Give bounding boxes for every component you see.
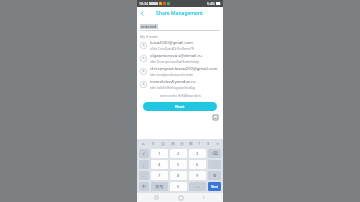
- staticText: $: [207, 141, 210, 146]
- staticText: olgaantonova.s@dtmail.ru: [150, 53, 202, 59]
- button[interactable]: 1: [151, 149, 168, 158]
- staticText: ⌫: [212, 151, 218, 156]
- staticText: entered: [141, 24, 157, 29]
- staticText: 8: [177, 173, 180, 179]
- staticText: 6: [196, 162, 199, 168]
- button[interactable]: Home: [176, 193, 185, 202]
- staticText: ¥: [152, 141, 155, 146]
- staticText: christmyrainlosew250@gmail.com: [150, 66, 218, 72]
- button[interactable]: 車: [186, 139, 195, 148]
- button[interactable]: 7: [151, 171, 168, 180]
- staticText: -: [143, 173, 145, 179]
- staticText: ⚙: [213, 173, 217, 178]
- button[interactable]: christmyrainlosew250@gmail.com: [137, 65, 223, 78]
- staticText: .: [214, 162, 216, 168]
- staticText: 5:4G: [207, 1, 215, 6]
- staticText: iden bcsdqaonhuaacschensiko: [150, 73, 194, 77]
- button[interactable]: ⌂: [138, 139, 148, 148]
- staticText: 1: [198, 141, 201, 146]
- button[interactable]: Back: [199, 193, 208, 202]
- button[interactable]: luisa2020@gmail.com: [137, 39, 223, 52]
- staticText: 台: [180, 141, 184, 146]
- button[interactable]: /: [139, 149, 149, 158]
- button[interactable]: $: [204, 139, 213, 148]
- button[interactable]: Back: [137, 8, 148, 19]
- button[interactable]: 2: [170, 149, 187, 158]
- button[interactable]: 点: [158, 139, 168, 148]
- staticText: Share Management: [156, 10, 204, 17]
- staticText: 0: [177, 184, 180, 190]
- staticText: /: [143, 151, 145, 157]
- staticText: 7: [158, 173, 161, 179]
- button[interactable]: 9: [189, 171, 206, 180]
- staticText: Next: [175, 104, 185, 110]
- staticText: My friends: [140, 34, 158, 39]
- staticText: mraceloksvllyamdox.ru: [150, 79, 196, 85]
- staticText: 1: [158, 151, 161, 157]
- staticText: 2: [177, 151, 180, 157]
- button[interactable]: mraceloksvllyamdox.ru: [137, 78, 223, 91]
- staticText: 10:34: [139, 1, 148, 6]
- staticText: id bir CrissQainADrOeiOsmuYPi: [150, 47, 195, 51]
- staticText: 品: [171, 141, 175, 146]
- staticText: iden Drcarujunaos0naEbudorkhalp: [150, 60, 200, 64]
- button[interactable]: 品: [168, 139, 177, 148]
- staticText: ⌴: [196, 185, 200, 189]
- button[interactable]: ∞: [213, 139, 222, 148]
- button[interactable]: Next: [208, 182, 221, 191]
- staticText: ∞: [216, 141, 220, 146]
- staticText: 中: [142, 184, 147, 189]
- button[interactable]: entered: [140, 23, 220, 30]
- button[interactable]: 台: [177, 139, 186, 148]
- button[interactable]: 3: [189, 149, 206, 158]
- button[interactable]: 8: [170, 171, 187, 180]
- staticText: 点: [161, 141, 165, 146]
- staticText: 9: [196, 173, 199, 179]
- button[interactable]: 0: [170, 182, 187, 191]
- button[interactable]: ¥: [148, 139, 158, 148]
- staticText: 4: [158, 162, 161, 168]
- button[interactable]: ,: [139, 160, 149, 169]
- staticText: some ondto hhNiAlliwontkris: [160, 94, 201, 98]
- button[interactable]: 1: [195, 139, 204, 148]
- staticText: Next: [211, 185, 218, 189]
- staticText: 車: [189, 141, 193, 146]
- button[interactable]: Recents: [152, 193, 161, 202]
- staticText: ⌂: [142, 141, 145, 146]
- staticText: luisa2020@gmail.com: [150, 40, 194, 46]
- button[interactable]: 符号: [151, 182, 168, 191]
- button[interactable]: 5: [170, 160, 187, 169]
- staticText: iden bdoiSn9blrhagsdwrkbokbg: [150, 86, 196, 90]
- staticText: 3: [196, 151, 199, 157]
- button[interactable]: Keyboard: [212, 114, 219, 121]
- button[interactable]: ⌫: [208, 149, 221, 158]
- button[interactable]: 6: [189, 160, 206, 169]
- staticText: 5: [177, 162, 180, 168]
- button[interactable]: 4: [151, 160, 168, 169]
- button[interactable]: ⚙: [208, 171, 221, 180]
- button[interactable]: Next: [143, 102, 217, 111]
- button[interactable]: olgaantonova.s@dtmail.ru: [137, 52, 223, 65]
- staticText: 符号: [155, 184, 164, 189]
- button[interactable]: 中: [139, 182, 149, 191]
- staticText: ,: [143, 162, 145, 168]
- button[interactable]: ⌴: [189, 182, 206, 191]
